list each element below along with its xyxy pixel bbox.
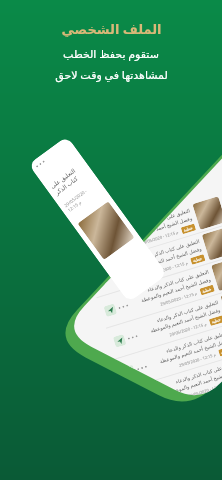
- staticText: 29/05/2020 - 12:15 م: [178, 352, 217, 368]
- staticText: وفضل الشيخ أحمد النعيم والموعظة: [122, 215, 194, 243]
- staticText: الملف الشخصي: [61, 20, 162, 38]
- staticText: التعليق على كتاب الذكر والدعاء: [147, 268, 210, 294]
- staticText: 29/05/2020 - 12:15 م: [169, 321, 208, 337]
- staticText: التعليق على كتاب الذكر والدعاء: [175, 360, 222, 386]
- staticText: 29/05/2020 - 12:15 م: [150, 260, 189, 276]
- staticText: 29/05/2020 - 12:15 م: [63, 181, 101, 213]
- staticText: وفضل الشيخ أحمد النعيم والموعظة: [178, 398, 222, 426]
- staticText: خطبة: [220, 347, 222, 355]
- staticText: 29/05/2020 - 12:15 م: [160, 291, 198, 307]
- staticText: 29/05/2020 - 12:15 م: [188, 382, 222, 399]
- staticText: التعليق على كتاب الذكر والدعاء: [137, 238, 201, 263]
- staticText: التعليق على كتاب الذكر والدعاء: [128, 207, 191, 233]
- staticText: وفضل الشيخ أحمد النعيم والموعظة: [131, 245, 203, 273]
- staticText: وفضل الشيخ أحمد النعيم والموعظة: [159, 337, 222, 365]
- staticText: التعليق على كتاب الذكر: [49, 162, 89, 197]
- staticText: ستقوم بحفظ الخطب: [63, 46, 159, 61]
- staticText: وفضل الشيخ أحمد النعيم والموعظة: [140, 276, 212, 304]
- staticText: 29/05/2020 - 12:15 م: [141, 229, 180, 246]
- staticText: خطبة: [202, 286, 213, 294]
- staticText: خطبة: [211, 317, 222, 324]
- staticText: لمشاهدتها في وقت لاحق: [55, 67, 168, 82]
- staticText: خطبة: [192, 256, 203, 263]
- staticText: وفضل الشيخ أحمد النعيم والموعظة: [168, 368, 222, 396]
- staticText: التعليق على كتاب الذكر والدعاء: [165, 330, 222, 355]
- staticText: وفضل الشيخ أحمد النعيم والموعظة: [150, 307, 222, 335]
- staticText: التعليق على كتاب الذكر والدعاء: [184, 391, 222, 416]
- staticText: التعليق على كتاب الذكر والدعاء: [156, 299, 219, 324]
- staticText: خطبة: [183, 225, 194, 233]
